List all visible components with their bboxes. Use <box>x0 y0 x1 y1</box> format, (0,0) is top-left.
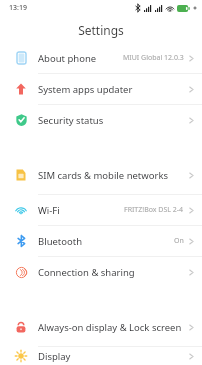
staticText: FRITZ!Box DSL 2-4 <box>124 205 184 215</box>
staticText: Bluetooth <box>38 235 83 248</box>
staticText: Wi-Fi <box>38 204 60 217</box>
button[interactable]: Security status <box>0 105 202 135</box>
button[interactable]: Display <box>0 347 202 365</box>
button[interactable]: SIM cards & mobile networks <box>0 156 202 194</box>
staticText: MIUI Global 12.0.3 <box>123 53 184 63</box>
staticText: Connection & sharing <box>38 266 135 279</box>
button[interactable]: Connection & sharing <box>0 257 202 287</box>
staticText: Settings <box>78 22 124 38</box>
staticText: About phone <box>38 52 97 65</box>
button[interactable]: System apps updater <box>0 74 202 104</box>
staticText: On <box>174 236 184 246</box>
staticText: Display <box>38 350 71 363</box>
staticText: System apps updater <box>38 83 133 96</box>
staticText: 13:19 <box>9 3 27 13</box>
button[interactable]: Wi-Fi <box>0 195 202 225</box>
button[interactable]: Always-on display & Lock screen <box>0 308 202 346</box>
staticText: SIM cards & mobile networks <box>38 169 169 182</box>
staticText: Always-on display & Lock screen <box>38 321 182 334</box>
staticText: Security status <box>38 114 104 127</box>
button[interactable]: About phone <box>0 43 202 73</box>
button[interactable]: Bluetooth <box>0 226 202 256</box>
